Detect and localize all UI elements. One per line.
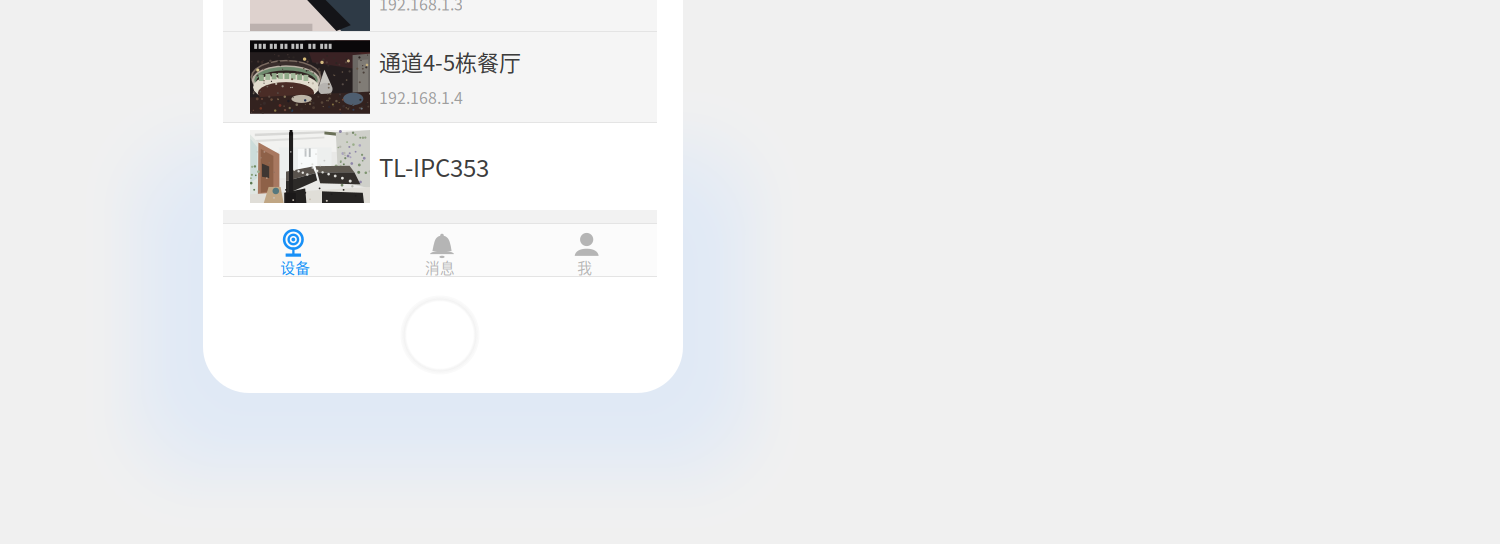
staticText: TL-IPC353: [379, 149, 489, 184]
button[interactable]: 消息: [368, 223, 512, 276]
staticText: 消息: [425, 256, 455, 278]
staticText: 192.168.1.3: [379, 0, 463, 15]
staticText: 我: [577, 256, 592, 278]
button[interactable]: 我: [512, 223, 657, 276]
button[interactable]: 通道4-5栋餐厅: [223, 32, 657, 122]
button[interactable]: 设备: [223, 223, 368, 276]
staticText: 通道4-5栋餐厅: [379, 45, 521, 77]
button[interactable]: TL-IPC353: [223, 123, 657, 210]
staticText: 192.168.1.4: [379, 85, 463, 108]
button[interactable]: 192.168.1.3: [223, 0, 657, 31]
staticText: 设备: [280, 256, 310, 278]
